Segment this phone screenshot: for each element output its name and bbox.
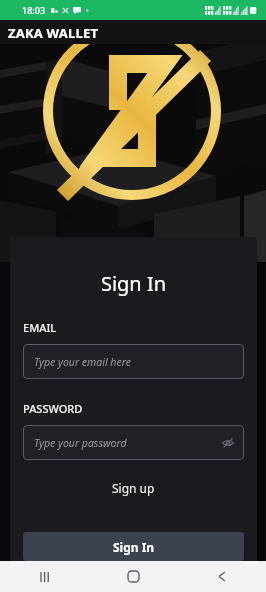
staticText: Type your password bbox=[34, 436, 127, 450]
staticText: Type your email here bbox=[34, 355, 131, 369]
button[interactable]: Sign up bbox=[23, 477, 244, 499]
button[interactable]: Show password bbox=[220, 435, 236, 451]
button[interactable]: Type your password bbox=[23, 425, 244, 460]
button[interactable]: Sign In bbox=[23, 532, 244, 561]
staticText: Sign In bbox=[23, 270, 244, 297]
staticText: ZAKA WALLET bbox=[8, 24, 99, 42]
button[interactable]: Back bbox=[200, 561, 244, 592]
button[interactable]: Home bbox=[111, 561, 155, 592]
staticText: PASSWORD bbox=[23, 401, 83, 416]
staticText: EMAIL bbox=[23, 320, 57, 335]
button[interactable]: Recent apps bbox=[22, 561, 66, 592]
button[interactable]: Type your email here bbox=[23, 344, 244, 379]
staticText: Sign In bbox=[113, 539, 155, 555]
staticText: 18:03 bbox=[22, 4, 46, 16]
staticText: Sign up bbox=[112, 480, 155, 496]
